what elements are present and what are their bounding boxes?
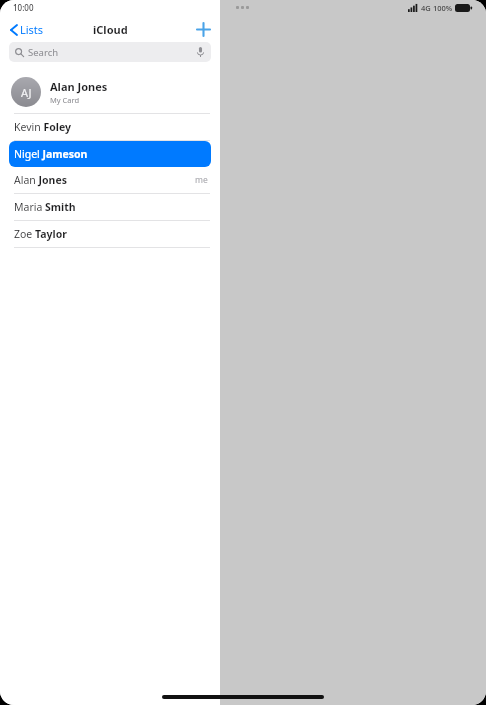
button[interactable]: Maria Smith: [0, 194, 220, 220]
staticText: Alan Jones: [14, 173, 67, 187]
staticText: Zoe Taylor: [14, 227, 67, 241]
staticText: 10:00: [13, 2, 34, 13]
button[interactable]: Nigel Jameson: [9, 141, 211, 167]
button[interactable]: Alan Jones: [0, 167, 220, 193]
staticText: My Card: [50, 95, 80, 105]
staticText: Kevin Foley: [14, 120, 71, 134]
button[interactable]: Zoe Taylor: [0, 221, 220, 247]
button[interactable]: Search: [9, 42, 211, 62]
button[interactable]: AJ: [0, 71, 220, 113]
button[interactable]: Lists: [0, 18, 50, 41]
staticText: me: [195, 174, 208, 186]
staticText: 100%: [433, 3, 453, 13]
button[interactable]: Add contact: [187, 19, 220, 40]
staticText: AJ: [21, 85, 32, 100]
staticText: Lists: [20, 22, 44, 37]
staticText: 4G: [421, 3, 431, 13]
staticText: iCloud: [93, 22, 128, 37]
staticText: Alan Jones: [50, 79, 108, 94]
staticText: Nigel Jameson: [14, 147, 88, 161]
button[interactable]: Kevin Foley: [0, 114, 220, 140]
staticText: Search: [28, 46, 59, 59]
staticText: Maria Smith: [14, 200, 76, 214]
